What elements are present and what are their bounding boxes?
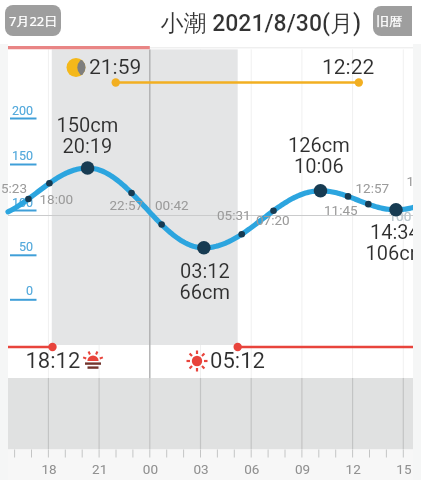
button[interactable]: 旧暦 7月: [373, 6, 412, 36]
staticText: 旧暦 7月: [373, 12, 412, 30]
button[interactable]: 7月22日: [5, 5, 61, 36]
staticText: 7月22日: [9, 12, 58, 30]
